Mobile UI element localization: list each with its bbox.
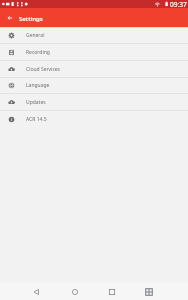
button[interactable]: General — [0, 27, 188, 44]
button[interactable]: Recents — [105, 285, 119, 299]
staticText: General — [26, 32, 45, 39]
button[interactable]: Home — [68, 285, 82, 299]
button[interactable]: ACR 14.5 — [0, 111, 188, 128]
button[interactable]: Back — [30, 285, 44, 299]
button[interactable]: Language — [0, 77, 188, 94]
staticText: Recording — [26, 49, 50, 56]
staticText: ACR 14.5 — [26, 116, 47, 123]
staticText: Cloud Services — [26, 66, 61, 73]
button[interactable]: Updates — [0, 94, 188, 111]
staticText: Updates — [26, 99, 46, 106]
staticText: 09:37 — [170, 0, 187, 8]
staticText: Language — [26, 82, 50, 89]
staticText: Settings — [19, 14, 43, 22]
button[interactable]: Cloud Services — [0, 61, 188, 78]
button[interactable]: Back — [4, 12, 16, 24]
button[interactable]: Apps — [142, 285, 156, 299]
button[interactable]: Recording — [0, 44, 188, 61]
